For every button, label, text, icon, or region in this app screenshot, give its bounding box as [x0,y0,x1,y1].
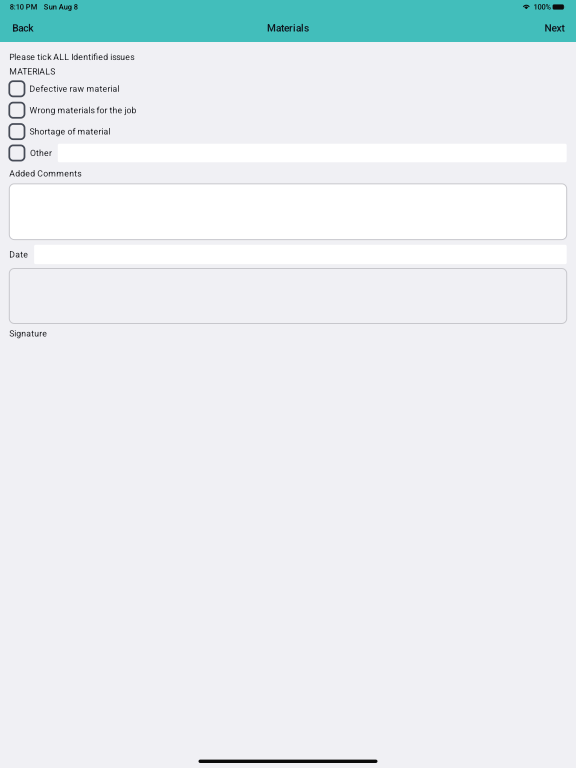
button[interactable]: Defective raw material [9,78,567,99]
staticText: Shortage of material [29,126,110,137]
staticText: Defective raw material [29,84,119,94]
staticText: Materials [267,22,309,34]
button[interactable]: Other [9,142,567,164]
staticText: Next [544,22,564,34]
staticText: Date [9,249,28,260]
staticText: Added Comments [9,168,81,179]
staticText: MATERIALS [9,66,55,77]
staticText: Sun Aug 8 [44,3,78,11]
button[interactable]: Next [530,16,564,40]
staticText: Back [12,22,33,34]
staticText: Please tick ALL Identified issues [9,52,134,62]
staticText: Signature [9,329,47,339]
button[interactable]: Shortage of material [9,121,567,142]
button[interactable]: Wrong materials for the job [9,99,567,121]
staticText: 100% [533,3,550,11]
button[interactable]: Back [12,16,47,40]
staticText: 8:10 PM [10,3,38,11]
staticText: Wrong materials for the job [29,105,136,115]
staticText: Other [30,148,52,158]
